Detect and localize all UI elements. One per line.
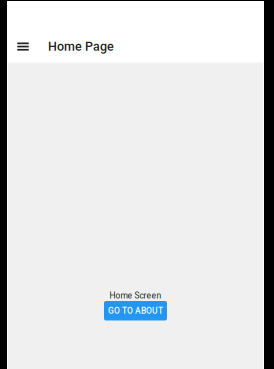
staticText: GO TO ABOUT [108,306,163,316]
staticText: Home Screen [109,290,161,300]
staticText: Home Page [48,39,114,54]
button[interactable]: GO TO ABOUT [104,301,167,320]
button[interactable]: Open menu [12,34,34,58]
